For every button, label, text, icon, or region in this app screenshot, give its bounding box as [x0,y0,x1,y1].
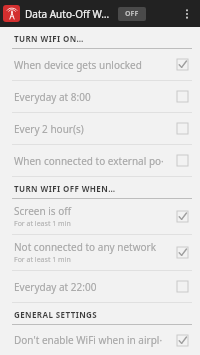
button[interactable]: Everyday at 22:00 [0,271,200,302]
staticText: Everyday at 22:00 [14,280,97,294]
staticText: Every 2 hour(s) [14,122,84,136]
other: Unchecked [177,123,188,134]
staticText: For at least 1 min [14,255,71,265]
other: Checked [177,335,188,346]
staticText: Not connected to any network [14,240,157,254]
button[interactable]: When connected to external po· [0,145,200,176]
button[interactable]: OFF [118,7,146,21]
button[interactable]: When device gets unlocked [0,49,200,80]
staticText: When connected to external po· [14,154,164,168]
staticText: OFF [125,9,139,19]
button[interactable]: Everyday at 8:00 [0,81,200,112]
staticText: Screen is off [14,204,72,218]
staticText: Data Auto-Off W… [25,7,110,21]
button[interactable]: Don't enable WiFi when in airpl· [0,325,200,355]
staticText: When device gets unlocked [14,58,142,72]
button[interactable]: Screen is off [0,199,200,234]
button[interactable]: Not connected to any network [0,235,200,270]
staticText: Everyday at 8:00 [14,90,91,104]
other: Checked [177,211,188,222]
staticText: GENERAL SETTINGS [14,309,98,320]
other: Unchecked [177,155,188,166]
staticText: TURN WIFI ON… [14,33,84,44]
button[interactable]: Every 2 hour(s) [0,113,200,144]
other: Checked [177,59,188,70]
staticText: Don't enable WiFi when in airpl· [14,333,163,347]
button[interactable]: More options [176,3,198,25]
other: Unchecked [177,281,188,292]
staticText: For at least 1 min [14,219,71,229]
staticText: TURN WIFI OFF WHEN… [14,183,116,194]
other: Checked [177,247,188,258]
other: Unchecked [177,91,188,102]
other: App icon [3,5,20,22]
